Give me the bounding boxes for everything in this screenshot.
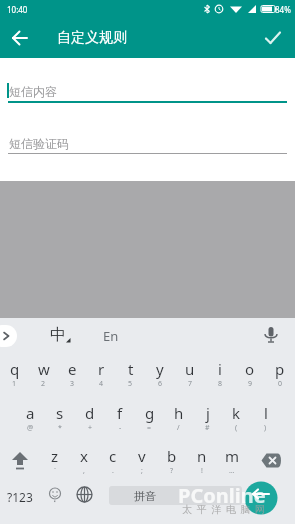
staticText: ` — [54, 466, 56, 476]
staticText: h — [174, 403, 184, 423]
staticText: 短信内容 — [9, 84, 57, 99]
staticText: l — [264, 403, 268, 423]
button[interactable]: z — [40, 439, 69, 482]
staticText: * — [58, 423, 62, 433]
button[interactable]: f — [105, 396, 135, 439]
staticText: z — [51, 446, 59, 466]
staticText: t — [128, 359, 134, 379]
button[interactable]: q — [0, 352, 29, 396]
button[interactable] — [259, 24, 287, 52]
button[interactable]: m — [217, 439, 247, 482]
staticText: 中 — [50, 325, 66, 345]
button[interactable]: x — [69, 439, 98, 482]
staticText: - — [119, 423, 122, 433]
staticText: k — [232, 403, 241, 423]
staticText: 84% — [275, 4, 291, 15]
staticText: 6 — [158, 379, 163, 389]
button[interactable]: 短信验证码 — [0, 130, 295, 175]
staticText: 太平洋电脑网 — [180, 503, 267, 516]
button[interactable] — [6, 24, 34, 52]
button[interactable]: k — [222, 396, 251, 439]
button[interactable]: l — [251, 396, 280, 439]
button[interactable] — [48, 488, 62, 502]
button[interactable] — [261, 325, 281, 345]
staticText: / — [177, 423, 180, 433]
button[interactable]: d — [75, 396, 105, 439]
button[interactable]: a — [15, 396, 45, 439]
staticText: 自定义规则 — [57, 29, 127, 47]
button[interactable]: y — [145, 352, 175, 396]
staticText: , — [83, 466, 85, 476]
staticText: = — [147, 423, 152, 433]
staticText: s — [56, 403, 64, 423]
button[interactable]: j — [193, 396, 222, 439]
staticText: a — [26, 403, 35, 423]
button[interactable]: 中 — [50, 318, 72, 352]
staticText: 拼音 — [134, 489, 156, 503]
staticText: 2 — [41, 379, 46, 389]
button[interactable] — [76, 486, 93, 503]
button[interactable]: En — [103, 327, 119, 345]
staticText: @ — [27, 423, 34, 433]
button[interactable]: t — [116, 352, 145, 396]
staticText: x — [80, 446, 88, 466]
staticText: 1 — [12, 379, 17, 389]
button[interactable]: u — [175, 352, 205, 396]
button[interactable]: c — [98, 439, 127, 482]
staticText: q — [10, 359, 20, 379]
staticText: j — [206, 403, 210, 423]
button[interactable]: n — [187, 439, 217, 482]
staticText: 9 — [248, 379, 253, 389]
staticText: ? — [170, 466, 174, 476]
staticText: 10:40 — [7, 4, 28, 15]
button[interactable] — [247, 439, 295, 482]
staticText: # — [205, 423, 210, 433]
staticText: 4 — [99, 379, 104, 389]
staticText: + — [88, 423, 93, 433]
button[interactable]: 拼音 — [109, 486, 242, 505]
staticText: r — [98, 359, 105, 379]
button[interactable]: g — [135, 396, 164, 439]
staticText: n — [197, 446, 207, 466]
button[interactable]: 短信内容 — [0, 78, 295, 123]
staticText: o — [245, 359, 255, 379]
staticText: u — [185, 359, 195, 379]
staticText: ) — [264, 423, 267, 433]
button[interactable]: s — [45, 396, 75, 439]
staticText: 0 — [278, 379, 283, 389]
staticText: f — [117, 403, 123, 423]
button[interactable]: i — [205, 352, 235, 396]
button[interactable]: p — [265, 352, 295, 396]
staticText: b — [167, 446, 177, 466]
staticText: g — [145, 403, 155, 423]
staticText: w — [38, 359, 50, 379]
button[interactable]: 。 — [246, 487, 258, 502]
staticText: . — [112, 466, 114, 476]
staticText: e — [68, 359, 77, 379]
staticText: y — [156, 359, 164, 379]
button[interactable]: h — [164, 396, 193, 439]
staticText: ! — [201, 466, 203, 476]
button[interactable]: e — [58, 352, 87, 396]
staticText: 8 — [218, 379, 223, 389]
staticText: p — [275, 359, 285, 379]
staticText: ( — [235, 423, 238, 433]
button[interactable]: v — [127, 439, 157, 482]
staticText: 7 — [188, 379, 193, 389]
staticText: ; — [141, 466, 143, 476]
button[interactable]: b — [157, 439, 187, 482]
staticText: 5 — [128, 379, 133, 389]
staticText: v — [138, 446, 146, 466]
staticText: m — [225, 446, 240, 466]
staticText: PConline — [178, 482, 266, 509]
staticText: … — [229, 466, 235, 476]
button[interactable] — [0, 325, 17, 347]
button[interactable]: o — [235, 352, 265, 396]
button[interactable]: r — [87, 352, 116, 396]
staticText: c — [109, 446, 117, 466]
button[interactable]: ?123 — [7, 489, 33, 505]
button[interactable]: w — [29, 352, 58, 396]
staticText: i — [218, 359, 222, 379]
staticText: d — [85, 403, 95, 423]
button[interactable] — [0, 439, 40, 482]
